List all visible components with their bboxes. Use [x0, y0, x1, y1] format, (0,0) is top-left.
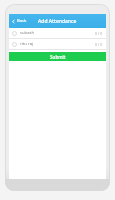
staticText: 0 / 0: [95, 42, 103, 47]
other: Toggle ritu raj: [12, 42, 17, 47]
button[interactable]: Toggle subash: [9, 28, 106, 38]
staticText: ritu raj: [20, 41, 95, 47]
staticText: subash: [20, 30, 95, 36]
other: Toggle subash: [12, 31, 17, 36]
staticText: 0 / 0: [95, 31, 103, 36]
staticText: Back: [17, 18, 27, 24]
staticText: Add Attendance: [38, 18, 77, 25]
button[interactable]: Submit: [9, 52, 106, 61]
staticText: Submit: [50, 54, 66, 60]
button[interactable]: Toggle ritu raj: [9, 39, 106, 49]
button[interactable]: Back: [9, 14, 30, 28]
